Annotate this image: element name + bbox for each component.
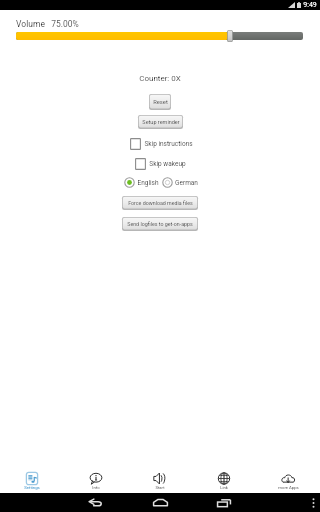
button[interactable]: Recents <box>200 493 248 512</box>
button[interactable]: Skip instructions <box>130 138 193 150</box>
staticText: 9:49 <box>303 1 317 9</box>
button[interactable]: more Apps <box>256 472 320 493</box>
staticText: 75.00% <box>51 19 79 29</box>
button[interactable]: Home <box>136 493 184 512</box>
button[interactable]: Skip wakeup <box>135 158 186 170</box>
staticText: more Apps <box>278 485 299 490</box>
button[interactable]: Settings <box>0 472 64 493</box>
button[interactable]: Start <box>128 472 192 493</box>
staticText: Settings <box>24 485 40 490</box>
button[interactable]: German <box>162 177 198 188</box>
staticText: German <box>175 179 198 187</box>
staticText: English <box>137 179 159 187</box>
staticText: Start <box>155 485 165 490</box>
staticText: Force download media files <box>128 200 193 206</box>
staticText: Volume <box>16 19 45 29</box>
button[interactable]: Send logfiles to get-on-apps <box>122 217 198 231</box>
button[interactable]: More options <box>306 493 320 512</box>
button[interactable]: Back <box>71 493 119 512</box>
staticText: Send logfiles to get-on-apps <box>127 221 193 227</box>
button[interactable]: English <box>124 177 159 188</box>
staticText: Skip instructions <box>144 140 193 148</box>
button[interactable]: Link <box>192 472 256 493</box>
button[interactable]: Volume slider <box>0 28 320 44</box>
staticText: Skip wakeup <box>149 160 186 168</box>
button[interactable]: Force download media files <box>122 196 198 210</box>
button[interactable]: Setup reminder <box>138 115 183 129</box>
button[interactable]: Info <box>64 472 128 493</box>
staticText: Counter: 0X <box>139 74 181 83</box>
staticText: Info <box>92 485 100 490</box>
staticText: Link <box>220 485 228 490</box>
staticText: Setup reminder <box>142 119 180 125</box>
staticText: Reset <box>153 99 168 106</box>
button[interactable]: Reset <box>149 94 171 110</box>
